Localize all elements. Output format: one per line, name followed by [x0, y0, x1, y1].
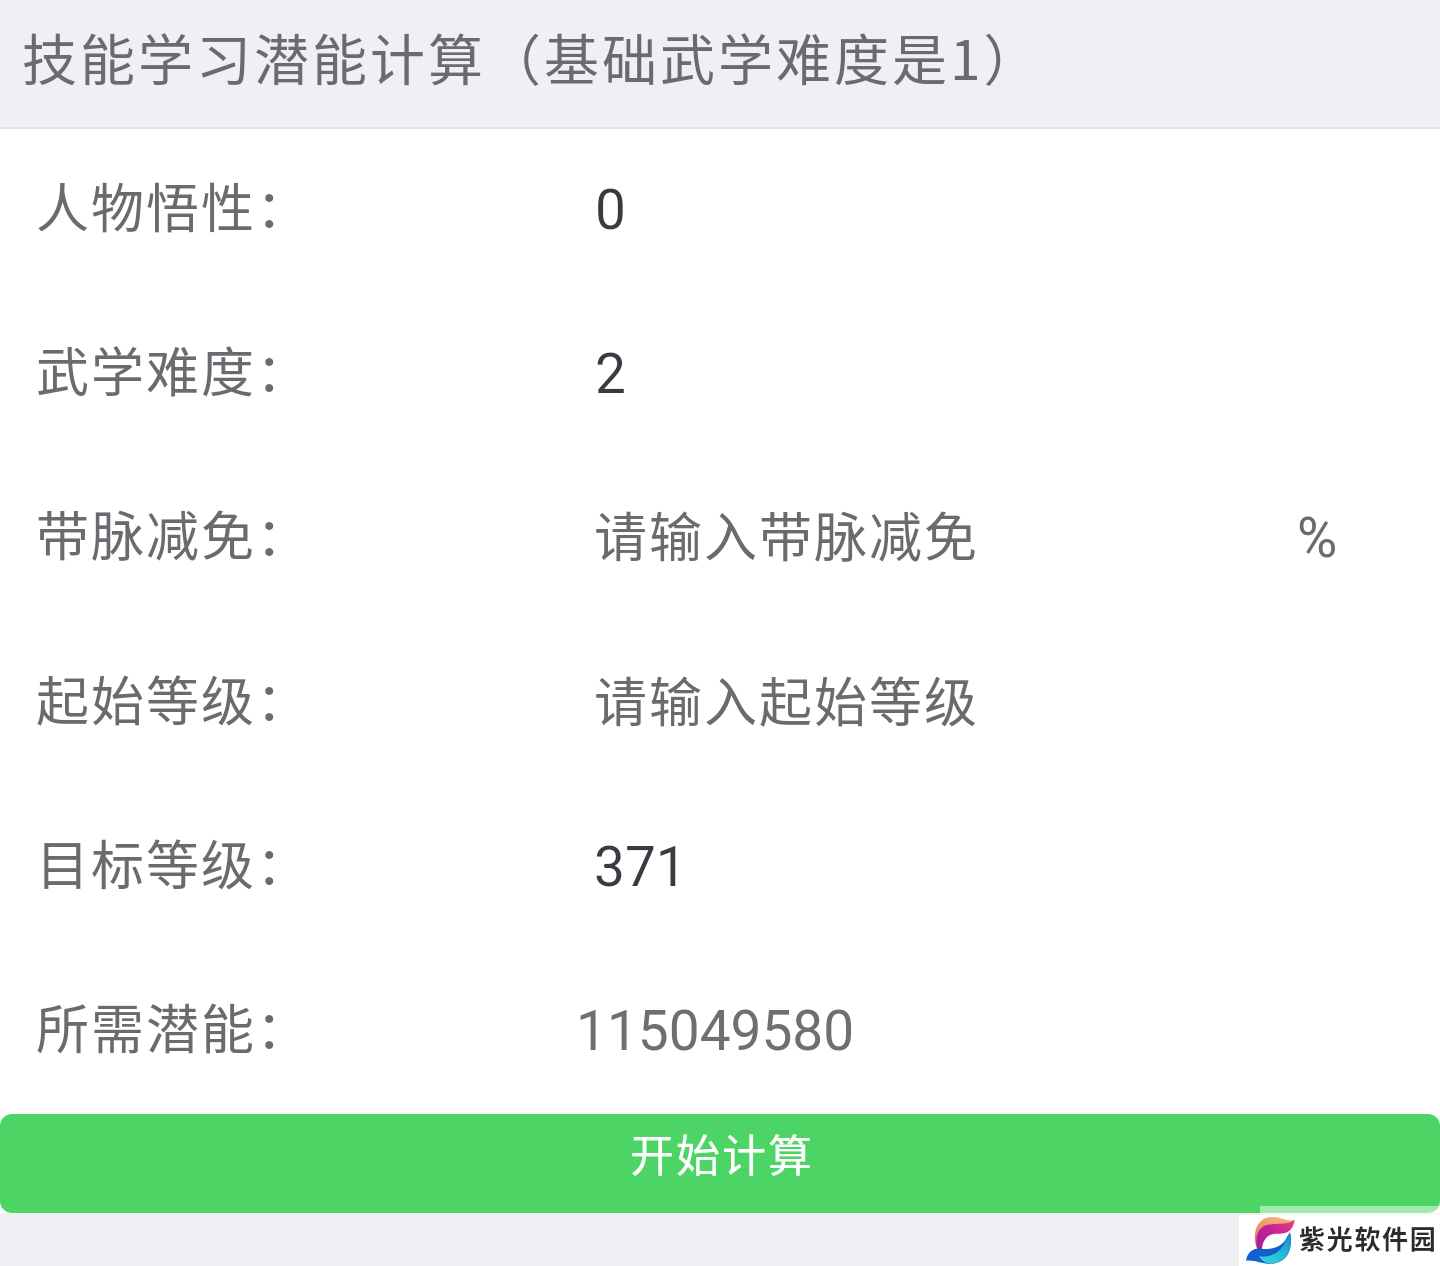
button[interactable]: 开始计算: [0, 1114, 1440, 1213]
button[interactable]: 起始等级：: [0, 617, 1440, 781]
staticText: 紫光软件园: [1299, 1219, 1438, 1257]
staticText: 请输入带脉减免: [594, 496, 979, 573]
button[interactable]: 目标等级：: [0, 781, 1440, 945]
other: 紫光软件园: [1239, 1215, 1440, 1266]
staticText: 开始计算: [630, 1121, 814, 1185]
staticText: 2: [595, 342, 626, 406]
staticText: 武学难度：: [36, 331, 311, 408]
staticText: 技能学习潜能计算（基础武学难度是1）: [22, 16, 1042, 96]
button[interactable]: 人物悟性：: [0, 124, 1440, 288]
staticText: 115049580: [576, 999, 855, 1063]
staticText: 起始等级：: [36, 660, 311, 737]
staticText: 人物悟性：: [36, 167, 311, 244]
staticText: 0: [595, 178, 626, 242]
staticText: 所需潜能：: [36, 988, 311, 1065]
button[interactable]: 武学难度：: [0, 288, 1440, 452]
button[interactable]: 所需潜能：: [0, 945, 1440, 1109]
staticText: 请输入起始等级: [594, 661, 979, 738]
staticText: %: [1297, 506, 1338, 570]
staticText: 目标等级：: [36, 824, 311, 901]
staticText: 371: [594, 835, 687, 899]
staticText: 带脉减免：: [36, 495, 311, 572]
button[interactable]: 带脉减免：: [0, 452, 1440, 616]
